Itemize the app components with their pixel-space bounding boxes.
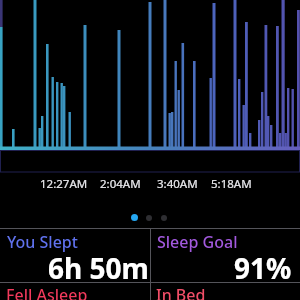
- staticText: 6h 50m: [48, 249, 149, 287]
- staticText: 3:40AM: [157, 176, 198, 191]
- button[interactable]: You Slept: [0, 229, 150, 282]
- button[interactable]: In Bed: [151, 283, 300, 300]
- staticText: You Slept: [7, 231, 78, 253]
- button[interactable]: [131, 214, 167, 221]
- staticText: 12:27AM: [40, 176, 88, 191]
- staticText: In Bed: [156, 284, 206, 300]
- button[interactable]: Fell Asleep: [0, 283, 150, 300]
- staticText: 2:04AM: [100, 176, 141, 191]
- button[interactable]: Sleep Goal: [151, 229, 300, 282]
- staticText: 91%: [234, 249, 292, 287]
- staticText: Sleep Goal: [157, 231, 238, 253]
- staticText: Fell Asleep: [6, 284, 88, 300]
- staticText: 5:18AM: [211, 176, 252, 191]
